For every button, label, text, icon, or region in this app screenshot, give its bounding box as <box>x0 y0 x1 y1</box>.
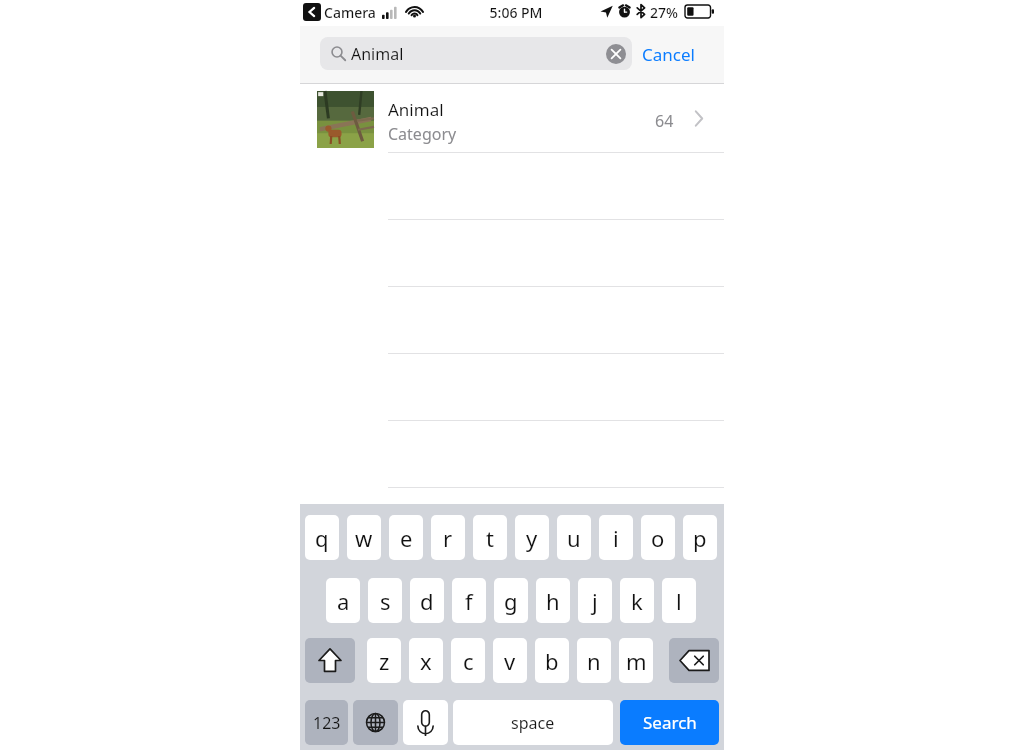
button[interactable]: f <box>452 578 486 623</box>
staticText: space <box>511 712 555 734</box>
button[interactable]: v <box>493 638 527 683</box>
button[interactable]: b <box>535 638 569 683</box>
staticText: y <box>526 523 538 553</box>
button[interactable]: e <box>389 515 423 560</box>
button[interactable]: d <box>410 578 444 623</box>
staticText: u <box>567 523 581 553</box>
button[interactable] <box>300 84 724 153</box>
staticText: 27% <box>650 3 678 22</box>
button[interactable]: o <box>641 515 675 560</box>
button[interactable]: 123 <box>305 700 348 745</box>
staticText: m <box>626 646 647 676</box>
button[interactable]: Switch keyboard <box>353 700 398 745</box>
button[interactable]: space <box>453 700 613 745</box>
staticText: n <box>587 646 601 676</box>
button[interactable]: Cancel <box>642 38 712 70</box>
button[interactable]: p <box>683 515 717 560</box>
staticText: Search <box>643 711 697 734</box>
staticText: Animal <box>388 98 444 121</box>
staticText: Cancel <box>642 43 695 66</box>
button[interactable]: w <box>347 515 381 560</box>
button[interactable]: Backspace <box>669 638 719 683</box>
button[interactable] <box>320 37 632 70</box>
button[interactable]: y <box>515 515 549 560</box>
staticText: h <box>546 586 560 616</box>
button[interactable]: Clear text <box>606 44 626 64</box>
staticText: c <box>463 646 474 676</box>
staticText: l <box>676 586 682 616</box>
staticText: k <box>631 586 643 616</box>
staticText: a <box>337 586 350 616</box>
button[interactable]: c <box>451 638 485 683</box>
staticText: p <box>693 523 707 553</box>
staticText: i <box>613 523 619 553</box>
button[interactable]: m <box>619 638 653 683</box>
button[interactable]: h <box>536 578 570 623</box>
staticText: g <box>504 586 518 616</box>
staticText: v <box>504 646 516 676</box>
staticText: Animal <box>351 43 404 65</box>
button[interactable]: x <box>409 638 443 683</box>
staticText: 123 <box>313 712 341 734</box>
staticText: e <box>400 523 413 553</box>
staticText: 5:06 PM <box>486 3 546 22</box>
staticText: q <box>315 523 329 553</box>
button[interactable]: r <box>431 515 465 560</box>
button[interactable]: t <box>473 515 507 560</box>
staticText: z <box>379 646 390 676</box>
staticText: r <box>443 523 453 553</box>
staticText: w <box>355 523 373 553</box>
button[interactable]: Shift <box>305 638 355 683</box>
button[interactable]: Search <box>620 700 719 745</box>
staticText: d <box>420 586 434 616</box>
button[interactable]: u <box>557 515 591 560</box>
button[interactable]: z <box>367 638 401 683</box>
button[interactable]: s <box>368 578 402 623</box>
button[interactable]: n <box>577 638 611 683</box>
staticText: t <box>486 523 494 553</box>
button[interactable]: Dictate <box>403 700 448 745</box>
button[interactable]: k <box>620 578 654 623</box>
staticText: x <box>420 646 432 676</box>
staticText: s <box>380 586 391 616</box>
button[interactable]: l <box>662 578 696 623</box>
button[interactable]: i <box>599 515 633 560</box>
button[interactable]: a <box>326 578 360 623</box>
staticText: Category <box>388 123 457 145</box>
staticText: f <box>465 586 473 616</box>
staticText: b <box>545 646 559 676</box>
staticText: o <box>651 523 665 553</box>
staticText: 64 <box>655 110 674 132</box>
staticText: j <box>592 586 598 616</box>
button[interactable]: j <box>578 578 612 623</box>
button[interactable]: q <box>305 515 339 560</box>
staticText: Camera <box>324 3 376 22</box>
button[interactable]: g <box>494 578 528 623</box>
